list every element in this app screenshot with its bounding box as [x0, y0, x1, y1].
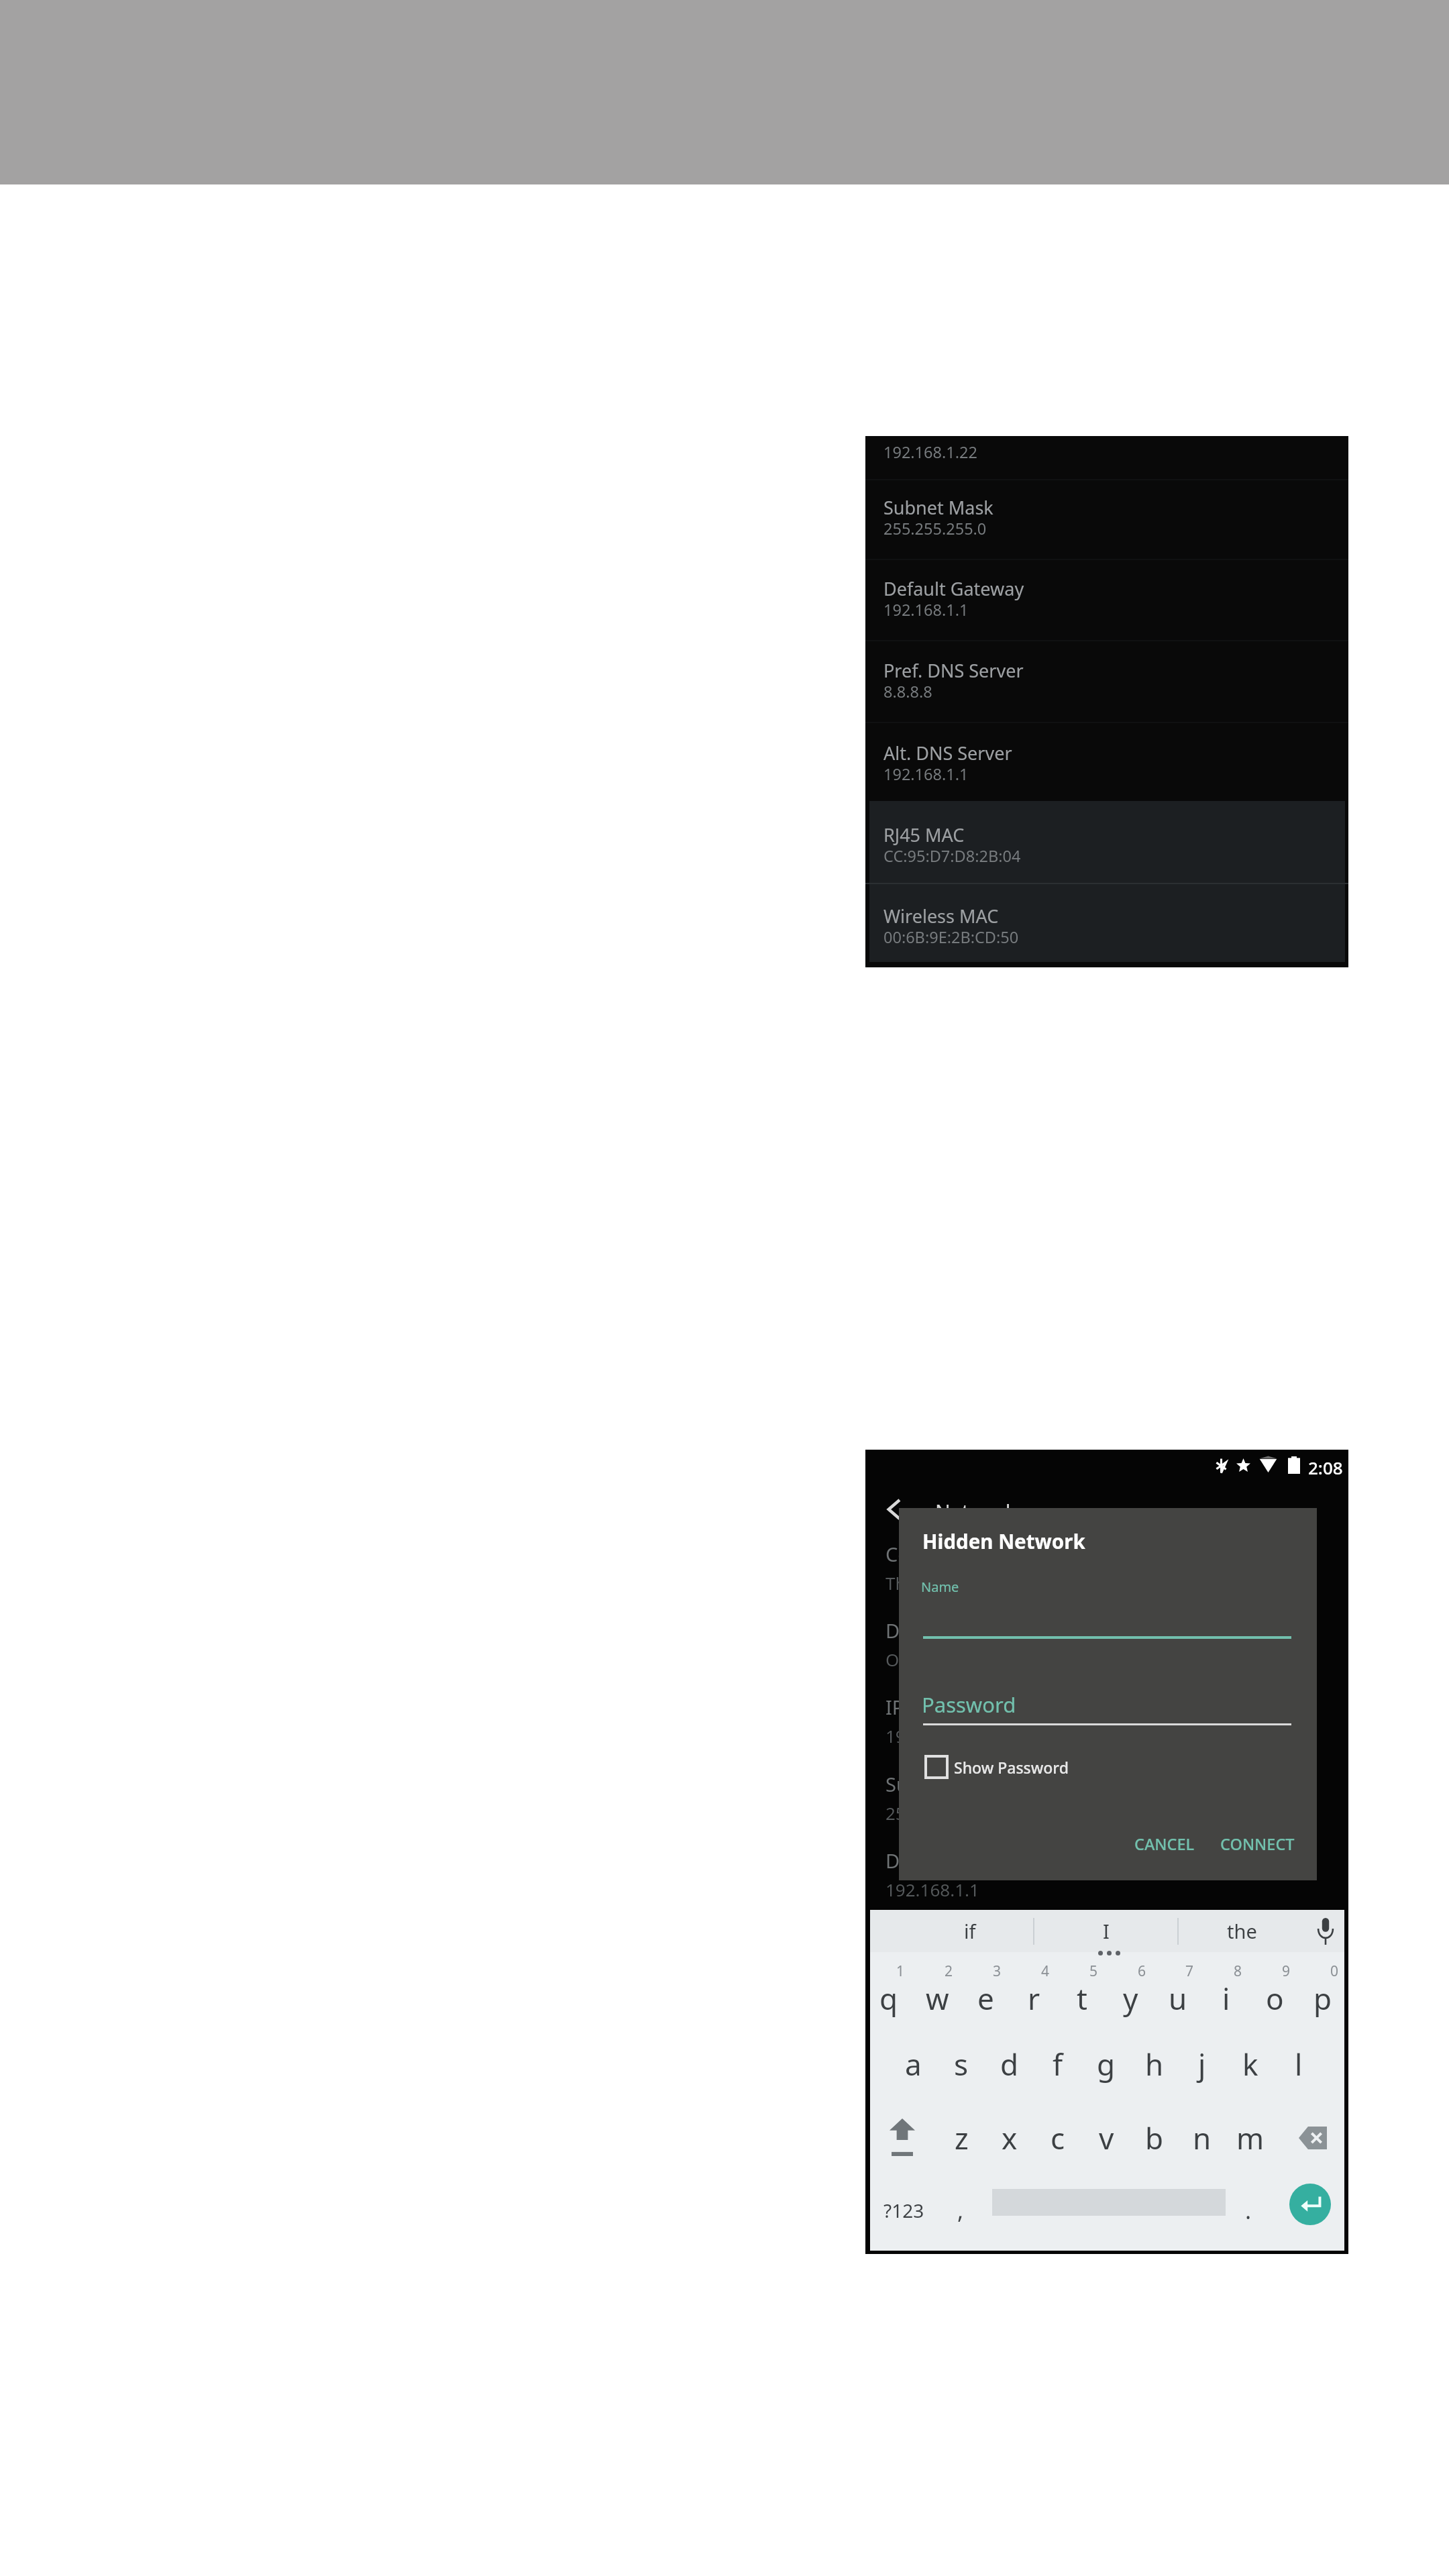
button[interactable]: Shift [866, 2102, 938, 2174]
staticText: 192.168.1.1 [883, 763, 969, 785]
button[interactable]: RJ45 MAC [865, 814, 1348, 848]
button[interactable]: 5 [1058, 1954, 1106, 2027]
button[interactable]: . [1228, 2177, 1269, 2244]
staticText: 7 [1185, 1962, 1194, 1981]
staticText: Subnet Mask [883, 495, 994, 520]
staticText: The Wifi Network [885, 1571, 1026, 1595]
button[interactable]: Back [884, 1496, 903, 1523]
staticText: 255.255.255.0 [885, 1801, 1000, 1825]
staticText: q [879, 1978, 898, 2019]
staticText: r [1028, 1978, 1040, 2019]
staticText: l [1295, 2044, 1303, 2084]
staticText: w [926, 1978, 949, 2019]
button[interactable]: , [941, 2177, 981, 2244]
button[interactable]: I [1034, 1910, 1178, 1952]
button[interactable]: Pref. DNS Server [865, 650, 1348, 684]
button[interactable]: 3 [961, 1954, 1010, 2027]
button[interactable]: 4 [1010, 1954, 1058, 2027]
button[interactable]: if [906, 1910, 1034, 1952]
staticText: , [957, 2195, 964, 2226]
button[interactable]: h [1130, 2028, 1179, 2100]
button[interactable]: 7 [1154, 1954, 1202, 2027]
button[interactable]: Default Gateway [865, 568, 1348, 602]
staticText: y [1123, 1978, 1138, 2019]
button[interactable]: s [937, 2028, 985, 2100]
staticText: o [1266, 1978, 1284, 2019]
button[interactable]: 0 [1299, 1954, 1347, 2027]
button[interactable]: Voice input [1305, 1910, 1345, 1952]
button[interactable]: 6 [1106, 1954, 1155, 2027]
staticText: 9 [1282, 1962, 1291, 1981]
button[interactable]: Enter [1289, 2184, 1331, 2225]
staticText: 00:6B:9E:2B:CD:50 [883, 926, 1019, 948]
button[interactable]: z [937, 2102, 985, 2174]
button[interactable]: c [1034, 2102, 1082, 2174]
button[interactable]: x [985, 2102, 1034, 2174]
button[interactable]: Wireless MAC [865, 896, 1348, 929]
button[interactable]: Subnet Mask [865, 487, 1348, 521]
staticText: m [1236, 2118, 1265, 2158]
staticText: 192.168.1.1 [885, 1878, 979, 1901]
staticText: 192.168.1.1 [883, 599, 969, 621]
staticText: Network [935, 1498, 1016, 1525]
staticText: On [885, 1648, 910, 1671]
button[interactable]: ?123 [870, 2177, 937, 2244]
staticText: 1 [896, 1962, 905, 1981]
button[interactable]: CONNECT [1215, 1829, 1300, 1859]
button[interactable]: CANCEL [1129, 1829, 1200, 1859]
button[interactable]: 9 [1250, 1954, 1299, 2027]
staticText: v [1099, 2118, 1114, 2158]
button[interactable]: 2 [913, 1954, 961, 2027]
staticText: CONNECT [1220, 1833, 1295, 1855]
button[interactable]: g [1082, 2028, 1130, 2100]
staticText: z [955, 2118, 969, 2158]
button[interactable]: m [1226, 2102, 1275, 2174]
button[interactable]: d [985, 2028, 1034, 2100]
staticText: 192.168.1.22 [883, 441, 977, 463]
staticText: 192.168.1.22 [885, 1724, 989, 1748]
button[interactable]: Alt. DNS Server [865, 733, 1348, 766]
button[interactable]: b [1130, 2102, 1179, 2174]
button[interactable]: n [1178, 2102, 1226, 2174]
button[interactable]: 8 [1202, 1954, 1250, 2027]
button[interactable]: Show Password [926, 1756, 1069, 1778]
button[interactable]: j [1178, 2028, 1226, 2100]
staticText: Hidden Network [922, 1527, 1085, 1554]
staticText: f [1053, 2044, 1063, 2084]
staticText: u [1169, 1978, 1187, 2019]
staticText: if [964, 1918, 976, 1944]
button[interactable]: l [1275, 2028, 1323, 2100]
staticText: 2:08 [1308, 1456, 1343, 1479]
staticText: i [1222, 1978, 1230, 2019]
staticText: j [1198, 2044, 1206, 2084]
button[interactable]: 1 [865, 1954, 913, 2027]
staticText: 4 [1041, 1962, 1050, 1981]
staticText: 8 [1234, 1962, 1242, 1981]
button[interactable]: f [1034, 2028, 1082, 2100]
staticText: RJ45 MAC [883, 822, 965, 847]
staticText: CANCEL [1134, 1833, 1195, 1855]
button[interactable]: Backspace [1277, 2102, 1349, 2174]
button[interactable]: the [1178, 1910, 1305, 1952]
button[interactable]: k [1226, 2028, 1275, 2100]
staticText: DHCP [885, 1617, 938, 1644]
staticText: Pref. DNS Server [883, 658, 1024, 683]
staticText: 3 [993, 1962, 1002, 1981]
staticText: s [954, 2044, 969, 2084]
button[interactable]: a [889, 2028, 937, 2100]
staticText: CC:95:D7:D8:2B:04 [883, 845, 1021, 867]
staticText: b [1145, 2118, 1164, 2158]
staticText: Password [922, 1690, 1016, 1719]
staticText: I [1103, 1918, 1110, 1944]
staticText: d [1000, 2044, 1019, 2084]
staticText: Subnet Mask [885, 1771, 1004, 1797]
staticText: x [1002, 2118, 1018, 2158]
staticText: h [1145, 2044, 1164, 2084]
staticText: . [1245, 2195, 1252, 2226]
button[interactable]: v [1082, 2102, 1130, 2174]
staticText: 6 [1138, 1962, 1146, 1981]
staticText: 255.255.255.0 [883, 518, 987, 539]
staticText: 8.8.8.8 [883, 681, 932, 702]
staticText: a [905, 2044, 922, 2084]
